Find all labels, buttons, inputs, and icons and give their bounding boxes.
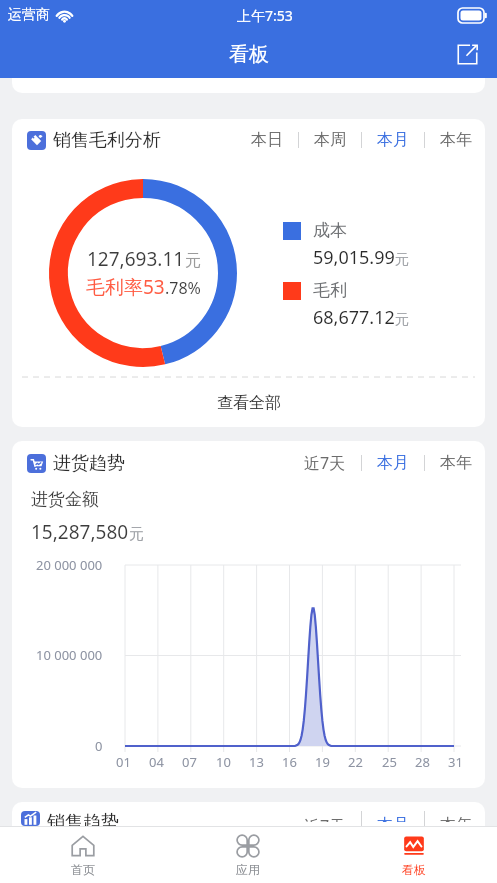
staticText: 毛利 xyxy=(313,280,347,301)
staticText: 成本 xyxy=(313,220,347,241)
staticText: 应用 xyxy=(236,862,260,877)
button[interactable]: 本月 xyxy=(377,811,409,826)
staticText: 本年 xyxy=(440,453,472,473)
staticText: 元 xyxy=(185,251,201,271)
staticText: 15,287,580 xyxy=(31,519,129,545)
staticText: 首页 xyxy=(71,862,95,877)
staticText: 本月 xyxy=(377,453,409,473)
staticText: 本月 xyxy=(377,815,409,822)
staticText: 近7天 xyxy=(304,815,346,822)
staticText: 04 xyxy=(149,753,164,771)
staticText: 看板 xyxy=(402,862,426,877)
staticText: 0 xyxy=(95,737,103,755)
staticText: 68,677.12 xyxy=(313,305,395,330)
staticText: 10 000 000 xyxy=(36,646,103,664)
staticText: 销售毛利分析 xyxy=(53,129,161,152)
staticText: 元 xyxy=(129,525,144,544)
staticText: 近7天 xyxy=(304,452,346,474)
button[interactable]: 看板 xyxy=(331,827,497,883)
staticText: 查看全部 xyxy=(217,393,281,413)
staticText: 16 xyxy=(282,753,297,771)
staticText: 31 xyxy=(448,753,463,771)
button[interactable]: 本月 xyxy=(377,449,409,477)
staticText: 毛利率53 xyxy=(86,274,165,300)
button[interactable]: 近7天 xyxy=(304,448,346,478)
staticText: 本日 xyxy=(251,130,283,150)
button[interactable]: 应用 xyxy=(165,827,331,883)
button[interactable]: 本年 xyxy=(440,126,472,154)
staticText: 本年 xyxy=(440,130,472,150)
staticText: 销售趋势 xyxy=(47,811,119,826)
staticText: 进货趋势 xyxy=(53,452,125,475)
button[interactable]: 查看全部 xyxy=(12,378,485,427)
staticText: .78% xyxy=(165,277,201,299)
staticText: 19 xyxy=(315,753,330,771)
button[interactable]: 本日 xyxy=(251,126,283,154)
staticText: 本年 xyxy=(440,815,472,822)
staticText: 01 xyxy=(116,753,131,771)
staticText: 07 xyxy=(182,753,197,771)
staticText: 看板 xyxy=(229,42,269,67)
button[interactable]: 本年 xyxy=(440,811,472,826)
button[interactable]: 近7天 xyxy=(304,811,346,826)
button[interactable]: 首页 xyxy=(0,827,165,883)
staticText: 本月 xyxy=(377,130,409,150)
staticText: 元 xyxy=(395,311,409,329)
staticText: 22 xyxy=(348,753,363,771)
staticText: 13 xyxy=(249,753,264,771)
button[interactable]: 本周 xyxy=(314,126,346,154)
staticText: 上午7:53 xyxy=(237,6,293,25)
staticText: 28 xyxy=(415,753,430,771)
staticText: 10 xyxy=(216,753,231,771)
staticText: 25 xyxy=(382,753,397,771)
button[interactable]: 编辑 xyxy=(447,34,487,74)
button[interactable]: 本年 xyxy=(440,449,472,477)
staticText: 本周 xyxy=(314,130,346,150)
staticText: 元 xyxy=(395,251,409,269)
staticText: 20 000 000 xyxy=(36,556,103,574)
button[interactable]: 本月 xyxy=(377,126,409,154)
staticText: 127,693.11 xyxy=(87,246,185,272)
staticText: 进货金额 xyxy=(31,489,99,510)
staticText: 59,015.99 xyxy=(313,245,395,270)
staticText: 运营商 xyxy=(8,6,50,24)
